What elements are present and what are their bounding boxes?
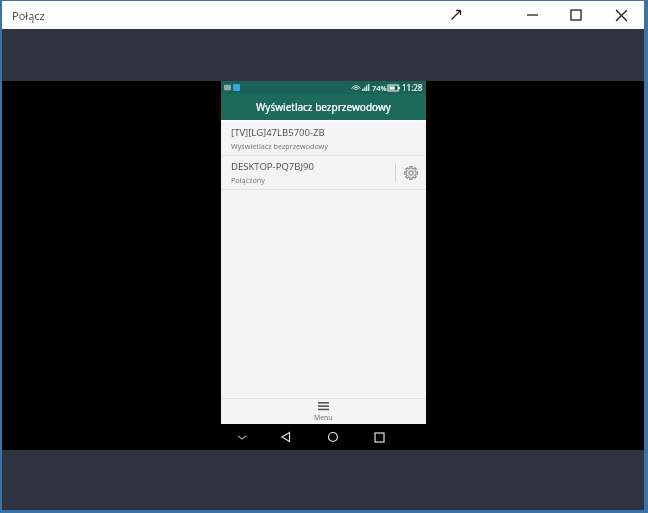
- button[interactable]: [TV][LG]47LB5700-ZB: [221, 122, 426, 155]
- button[interactable]: Back: [262, 424, 309, 450]
- staticText: Połączony: [231, 175, 265, 185]
- button[interactable]: DESKTOP-PQ7BJ90: [221, 156, 426, 189]
- button[interactable]: Maximize: [554, 1, 598, 29]
- staticText: 11:28: [402, 82, 423, 93]
- staticText: Połącz: [12, 8, 45, 23]
- staticText: Wyświetlacz bezprzewodowy: [256, 100, 391, 114]
- button[interactable]: Hide: [221, 424, 262, 450]
- button[interactable]: Menu: [221, 399, 426, 424]
- staticText: DESKTOP-PQ7BJ90: [231, 160, 314, 173]
- button[interactable]: Close: [598, 1, 644, 29]
- staticText: 74%: [372, 83, 387, 93]
- button[interactable]: Home: [309, 424, 356, 450]
- staticText: [TV][LG]47LB5700-ZB: [231, 126, 325, 139]
- button[interactable]: Expand: [434, 1, 478, 29]
- button[interactable]: Settings: [396, 156, 426, 189]
- staticText: Menu: [314, 413, 333, 422]
- staticText: Wyświetlacz bezprzewodowy: [231, 141, 328, 151]
- button[interactable]: Minimize: [510, 1, 554, 29]
- button[interactable]: Recents: [356, 424, 403, 450]
